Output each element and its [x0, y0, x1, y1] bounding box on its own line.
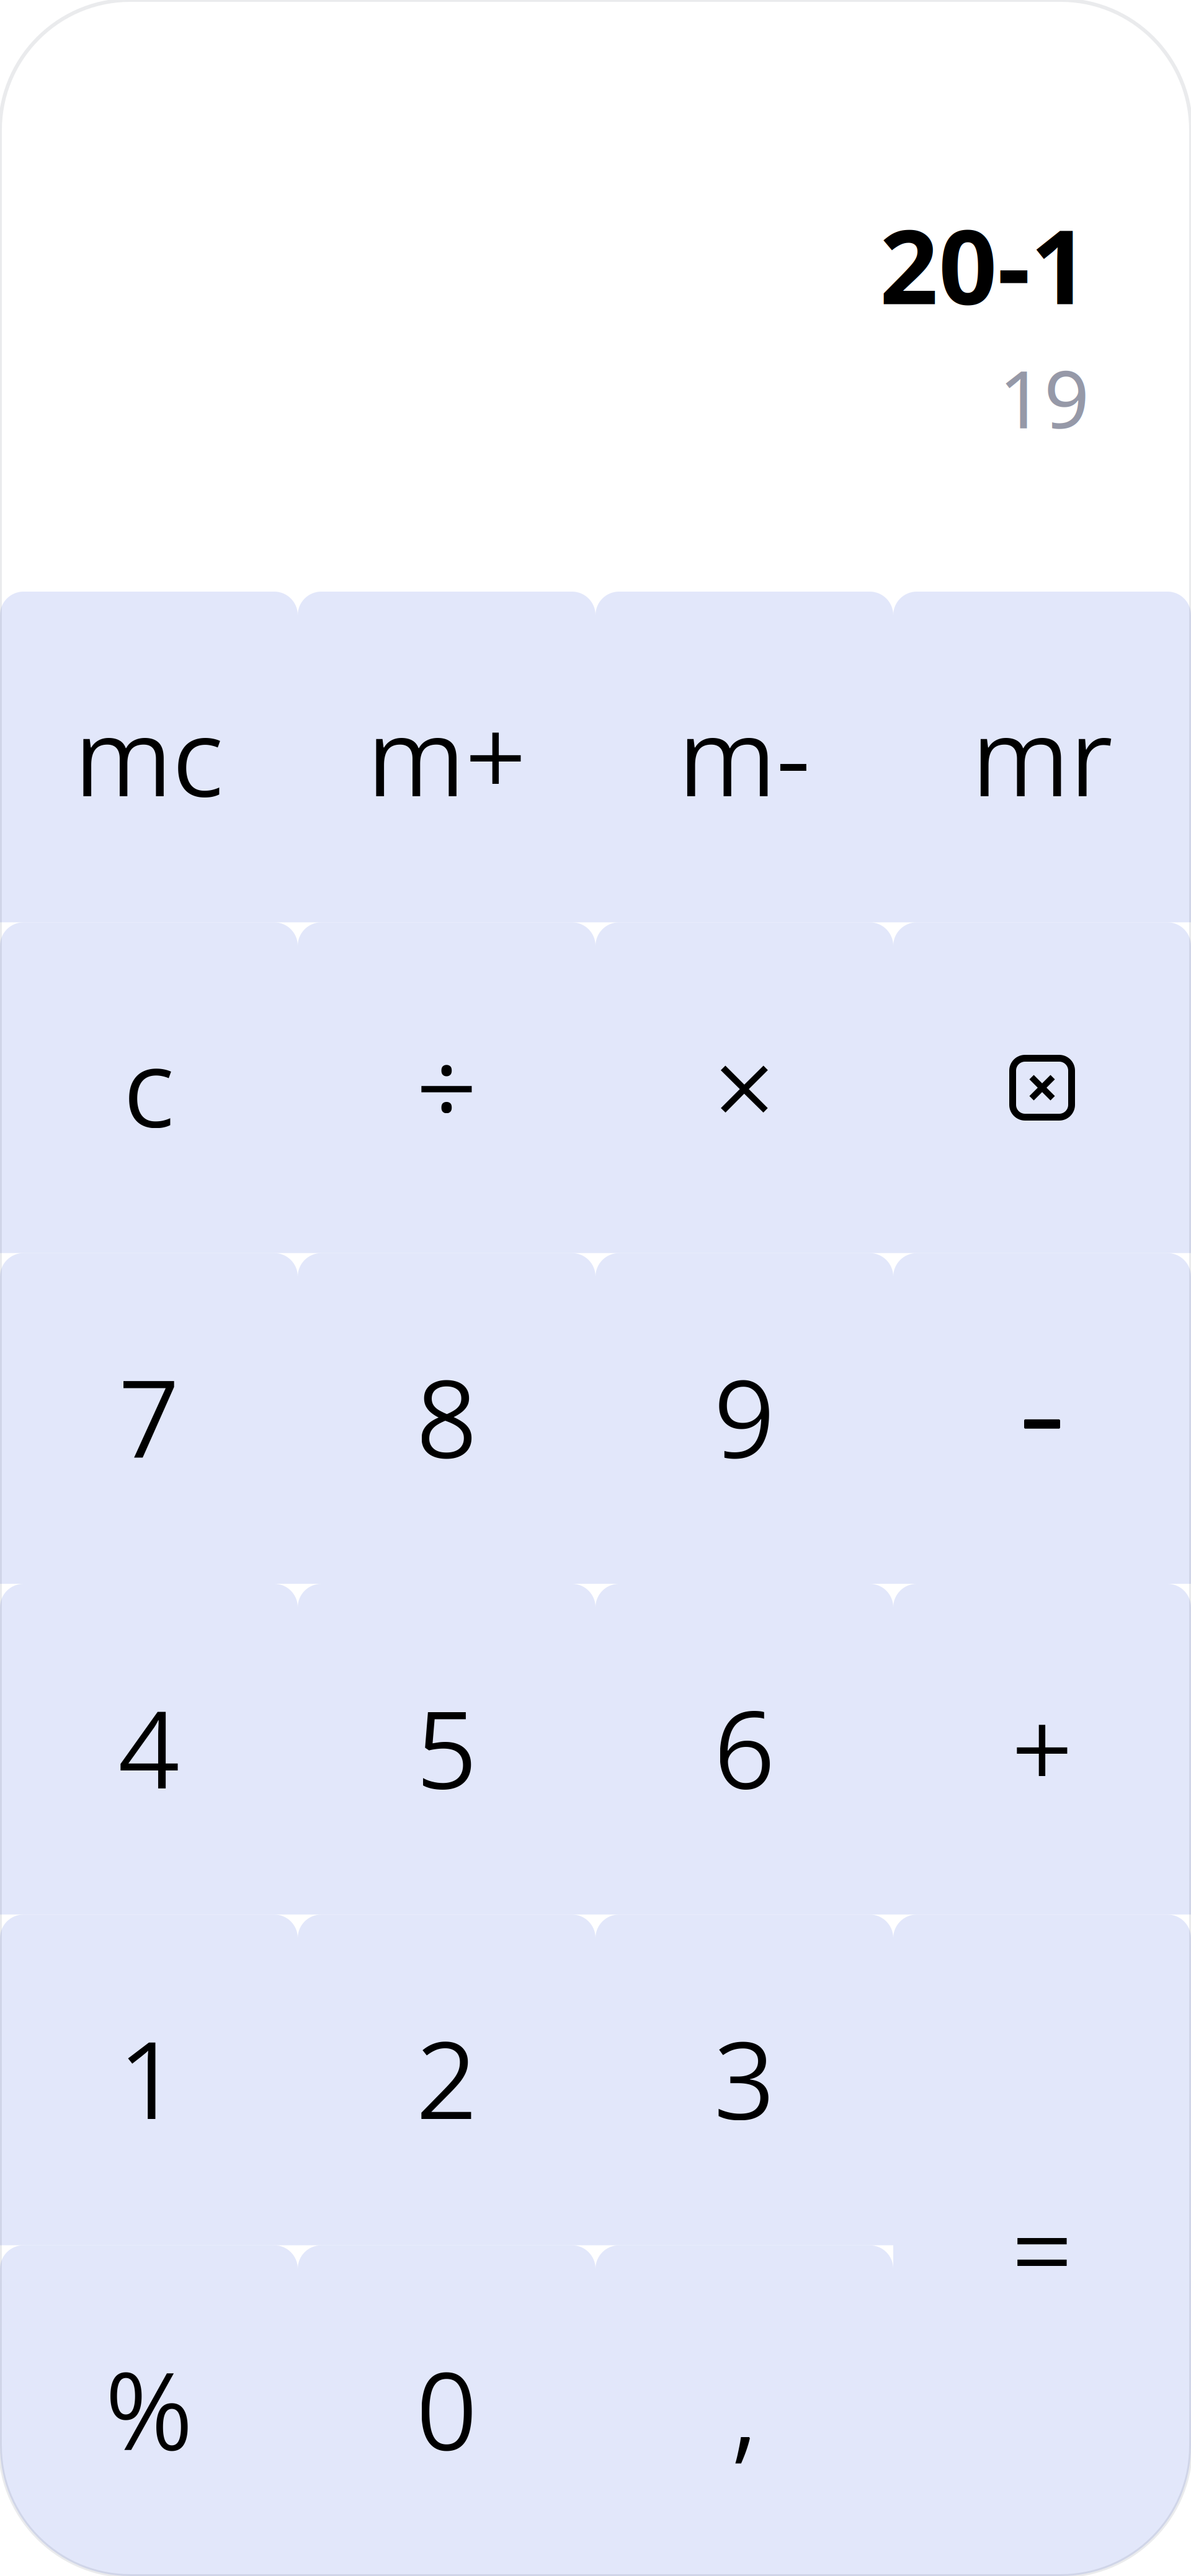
button[interactable]: mr [893, 592, 1191, 922]
button[interactable]: × [595, 922, 893, 1253]
button[interactable]: 3 [595, 1915, 893, 2245]
button[interactable]: 0 [298, 2245, 595, 2576]
staticText: m- [678, 681, 811, 828]
button[interactable]: m- [595, 592, 893, 922]
button[interactable]: 8 [298, 1253, 595, 1584]
button[interactable]: mc [0, 592, 298, 922]
button[interactable]: = [893, 1915, 1191, 2576]
staticText: 4 [118, 1673, 180, 1820]
staticText: + [1011, 1673, 1073, 1820]
button[interactable]: 7 [0, 1253, 298, 1584]
staticText: m+ [367, 681, 526, 828]
staticText: = [1011, 2175, 1073, 2322]
staticText: 20-1 [880, 196, 1089, 332]
staticText: 0 [416, 2335, 477, 2481]
staticText: 9 [714, 1343, 775, 1489]
button[interactable]: 4 [0, 1584, 298, 1915]
staticText: c [123, 1012, 175, 1158]
button[interactable]: 2 [298, 1915, 595, 2245]
staticText: ÷ [416, 1012, 477, 1158]
staticText: 7 [118, 1343, 180, 1489]
button[interactable]: , [595, 2245, 893, 2576]
staticText: × [714, 1012, 775, 1158]
button[interactable]: m+ [298, 592, 595, 922]
staticText: 19 [999, 345, 1089, 450]
staticText: mc [74, 681, 224, 828]
staticText: 2 [416, 2004, 477, 2151]
staticText: % [105, 2335, 193, 2481]
button[interactable]: 5 [298, 1584, 595, 1915]
button[interactable]: % [0, 2245, 298, 2576]
staticText: , [731, 2335, 758, 2481]
button[interactable]: + [893, 1584, 1191, 1915]
staticText: mr [971, 681, 1113, 828]
button[interactable]: 1 [0, 1915, 298, 2245]
staticText: 3 [714, 2004, 775, 2151]
staticText: 5 [416, 1673, 477, 1820]
button[interactable]: Clear entry [893, 922, 1191, 1253]
staticText: 6 [714, 1673, 775, 1820]
staticText: 8 [416, 1343, 477, 1489]
button[interactable]: c [0, 922, 298, 1253]
button[interactable]: 9 [595, 1253, 893, 1584]
button[interactable]: Minus [893, 1253, 1191, 1584]
button[interactable]: ÷ [298, 922, 595, 1253]
staticText: 1 [118, 2004, 180, 2151]
button[interactable]: 6 [595, 1584, 893, 1915]
